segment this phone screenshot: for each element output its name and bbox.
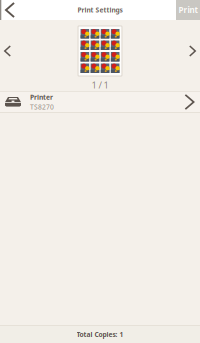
- button[interactable]: Next page: [179, 25, 200, 77]
- button[interactable]: Back: [0, 0, 28, 20]
- button[interactable]: Previous page: [0, 25, 21, 77]
- staticText: Print Settings: [77, 6, 122, 14]
- button[interactable]: Print: [176, 0, 200, 20]
- button[interactable]: Printer: [0, 91, 200, 113]
- staticText: Printer: [30, 93, 53, 101]
- staticText: TS8270: [30, 102, 54, 111]
- staticText: Print: [178, 5, 197, 15]
- staticText: Total Copies: 1: [76, 330, 123, 339]
- staticText: 1 / 1: [91, 79, 108, 91]
